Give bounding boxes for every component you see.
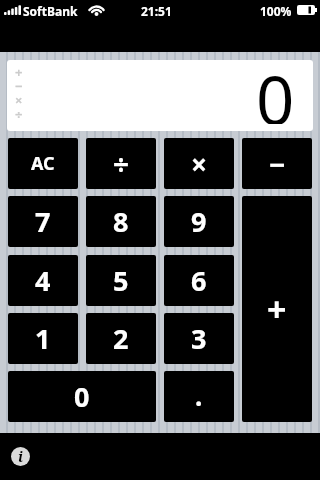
staticText: 100% <box>260 3 292 19</box>
button[interactable]: 3 <box>164 313 234 364</box>
staticText: 5 <box>113 262 129 299</box>
button[interactable]: 6 <box>164 255 234 306</box>
button[interactable]: i <box>11 447 30 466</box>
staticText: . <box>195 378 203 413</box>
button[interactable]: 1 <box>8 313 78 364</box>
staticText: + <box>267 286 287 332</box>
button[interactable]: 0 <box>8 371 156 422</box>
staticText: AC <box>31 151 55 176</box>
button[interactable]: + <box>242 196 312 422</box>
staticText: 9 <box>191 203 207 240</box>
staticText: 0 <box>256 60 295 124</box>
button[interactable]: 5 <box>86 255 156 306</box>
staticText: 2 <box>113 320 129 357</box>
button[interactable]: 9 <box>164 196 234 247</box>
staticText: i <box>18 447 23 466</box>
button[interactable]: ÷ <box>86 138 156 189</box>
button[interactable]: AC <box>8 138 78 189</box>
staticText: 4 <box>35 262 51 299</box>
button[interactable]: − <box>242 138 312 189</box>
staticText: SoftBank <box>23 3 78 19</box>
button[interactable]: . <box>164 371 234 422</box>
button[interactable]: × <box>164 138 234 189</box>
button[interactable]: 4 <box>8 255 78 306</box>
staticText: 8 <box>113 203 129 240</box>
staticText: 6 <box>191 262 207 299</box>
staticText: + <box>15 63 23 81</box>
staticText: − <box>15 77 23 95</box>
button[interactable]: 7 <box>8 196 78 247</box>
staticText: 1 <box>35 320 51 357</box>
staticText: 3 <box>191 320 207 357</box>
staticText: × <box>191 145 208 183</box>
staticText: ÷ <box>113 145 130 183</box>
staticText: 21:51 <box>141 3 172 19</box>
staticText: ÷ <box>15 105 23 123</box>
staticText: × <box>15 91 23 109</box>
button[interactable]: 8 <box>86 196 156 247</box>
staticText: 0 <box>74 378 90 415</box>
staticText: 7 <box>35 203 51 240</box>
button[interactable]: 2 <box>86 313 156 364</box>
staticText: − <box>269 145 286 183</box>
